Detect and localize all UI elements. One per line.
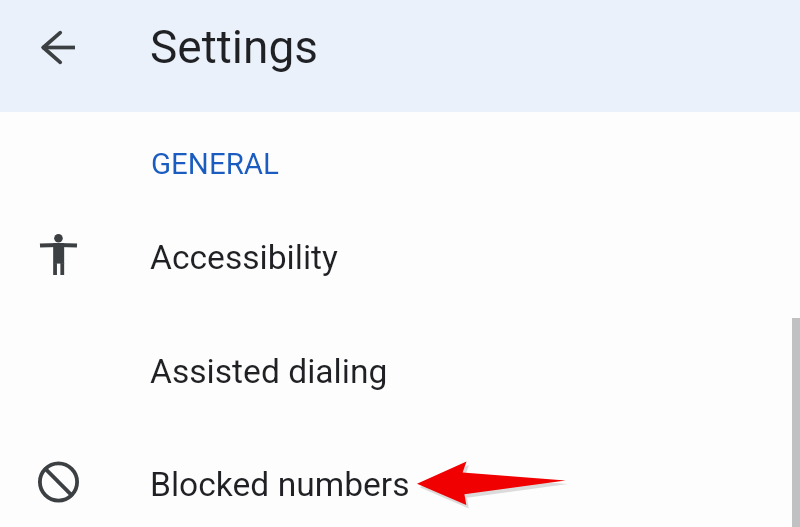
- staticText: Blocked numbers: [150, 465, 410, 504]
- button[interactable]: Assisted dialing: [0, 321, 800, 434]
- button[interactable]: Blocked numbers: [0, 434, 800, 527]
- staticText: Accessibility: [150, 238, 338, 277]
- staticText: GENERAL: [151, 147, 279, 182]
- staticText: Assisted dialing: [150, 352, 388, 391]
- button[interactable]: Accessibility: [0, 207, 800, 320]
- button[interactable]: Back: [30, 19, 86, 75]
- staticText: Settings: [150, 20, 318, 74]
